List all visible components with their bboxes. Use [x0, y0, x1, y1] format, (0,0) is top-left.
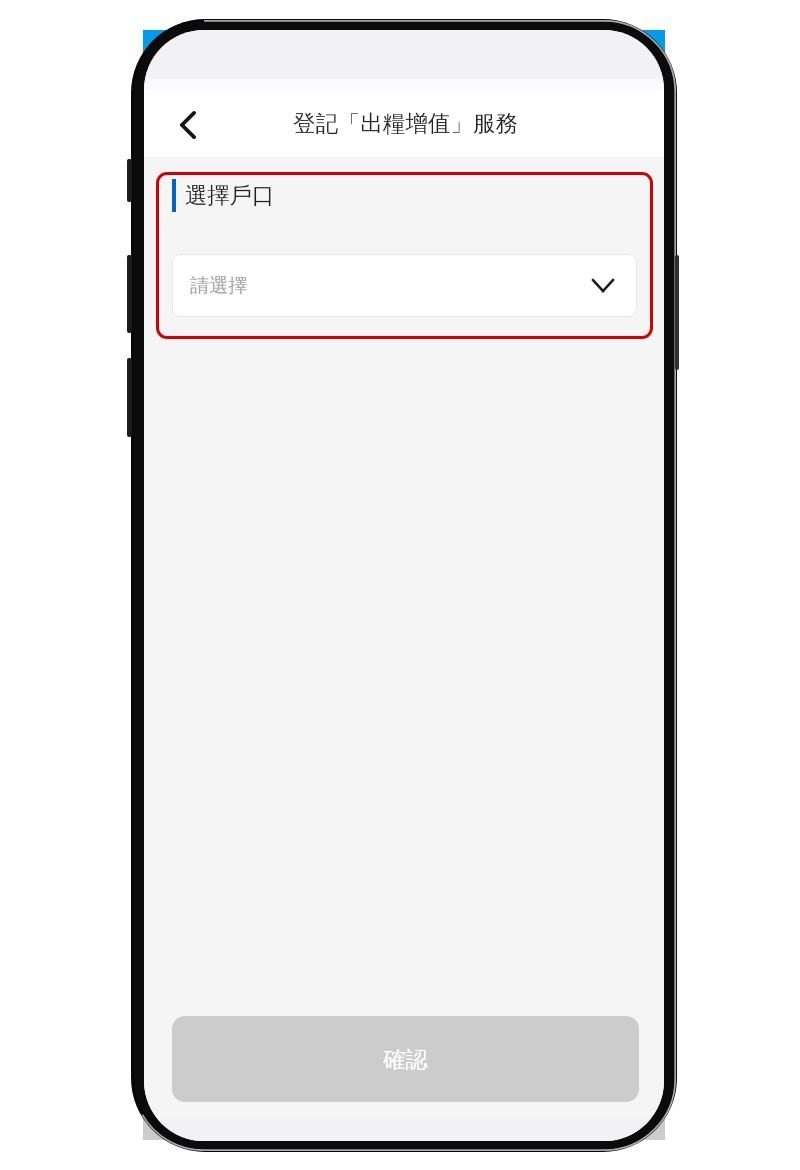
staticText: 選擇戶口 — [185, 182, 275, 210]
button[interactable]: 請選擇 — [172, 254, 637, 317]
button[interactable]: Mute switch — [127, 159, 132, 202]
button[interactable]: Volume up — [127, 255, 132, 333]
button[interactable]: Power — [675, 255, 679, 370]
staticText: 確認 — [383, 1046, 428, 1074]
button[interactable]: 確認 — [172, 1016, 639, 1102]
button[interactable]: Volume down — [127, 358, 132, 437]
staticText: 請選擇 — [190, 274, 248, 298]
staticText: 登記「出糧增值」服務 — [293, 109, 518, 137]
button[interactable]: Back — [164, 101, 212, 149]
